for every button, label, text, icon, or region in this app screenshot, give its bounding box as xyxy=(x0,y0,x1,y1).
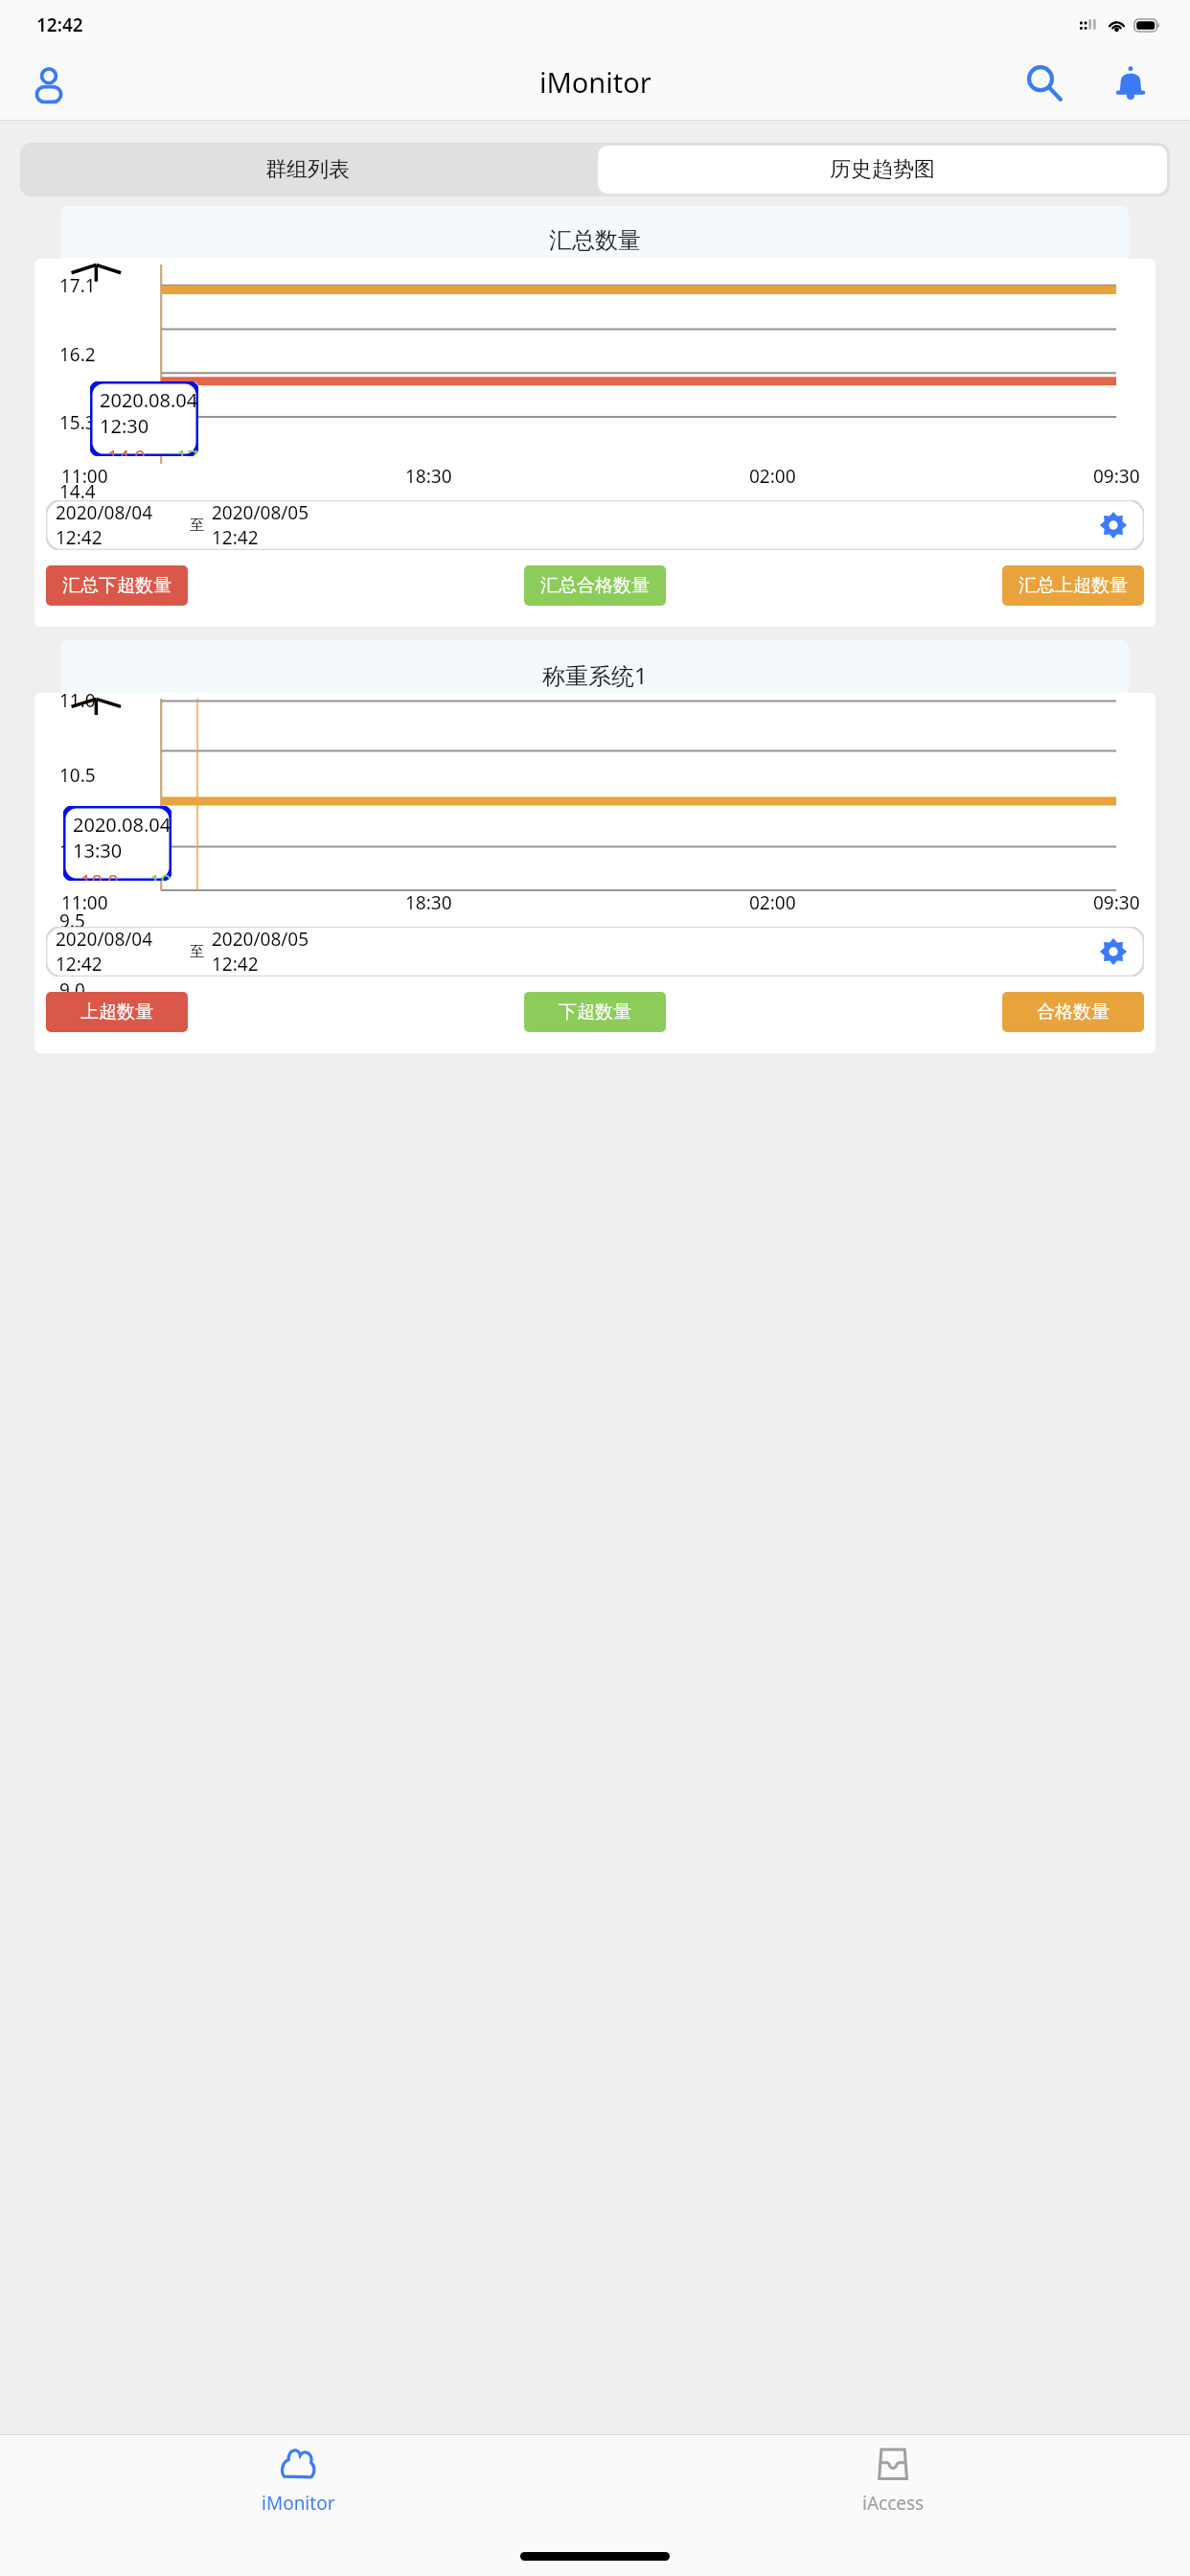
button[interactable]: 2020/08/05 12:42 xyxy=(212,500,346,550)
staticText: iMonitor xyxy=(539,63,652,101)
staticText: 14.0 xyxy=(107,444,146,456)
staticText: 9.5 xyxy=(59,908,85,933)
button[interactable]: Settings xyxy=(1094,932,1133,971)
staticText: 17.0 xyxy=(176,444,198,456)
staticText: 02:00 xyxy=(749,464,796,489)
staticText: 历史趋势图 xyxy=(830,156,935,183)
button[interactable]: iAccess xyxy=(797,2447,989,2516)
staticText: 至 xyxy=(190,943,204,961)
staticText: 09:30 xyxy=(1093,464,1140,489)
staticText: 称重系统1 xyxy=(542,659,648,691)
staticText: 群组列表 xyxy=(265,156,350,183)
staticText: 汇总数量 xyxy=(549,226,641,255)
button[interactable]: 2020/08/05 12:42 xyxy=(212,927,346,977)
button[interactable]: 汇总下超数量 xyxy=(46,565,188,606)
staticText: 合格数量 xyxy=(1037,1000,1110,1023)
staticText: 至 xyxy=(190,517,204,535)
staticText: 17.1 xyxy=(59,273,96,298)
staticText: 18:30 xyxy=(405,464,452,489)
staticText: iMonitor xyxy=(262,2491,335,2516)
staticText: 2020/08/04 12:42 xyxy=(56,500,182,550)
staticText: 2020.08.04 13:30 xyxy=(73,812,172,863)
button[interactable]: Search xyxy=(1010,49,1079,118)
staticText: 16.2 xyxy=(59,342,96,367)
button[interactable]: 历史趋势图 xyxy=(598,146,1167,194)
button[interactable]: 2020/08/04 12:42 xyxy=(56,927,182,977)
staticText: 汇总下超数量 xyxy=(62,574,172,597)
staticText: 9.0 xyxy=(59,977,85,1002)
staticText: 15.3 xyxy=(59,410,96,435)
staticText: 11:00 xyxy=(61,464,108,489)
staticText: 09:30 xyxy=(1093,890,1140,915)
button[interactable]: Notifications xyxy=(1096,49,1165,118)
staticText: 02:00 xyxy=(749,890,796,915)
staticText: 10.0 xyxy=(149,868,172,881)
staticText: 下超数量 xyxy=(559,1000,631,1023)
staticText: 12:42 xyxy=(36,12,83,37)
button[interactable]: Profile xyxy=(19,54,79,113)
staticText: 汇总合格数量 xyxy=(540,574,650,597)
button[interactable]: 下超数量 xyxy=(524,992,666,1032)
staticText: 2020/08/05 12:42 xyxy=(212,927,346,977)
staticText: 2020.08.04 12:30 xyxy=(100,387,198,439)
staticText: 10.0 xyxy=(80,868,119,881)
staticText: 11.0 xyxy=(59,693,96,713)
button[interactable]: 汇总上超数量 xyxy=(1002,565,1144,606)
staticText: 10.0 xyxy=(59,839,96,863)
staticText: iAccess xyxy=(862,2491,925,2516)
button[interactable]: 合格数量 xyxy=(1002,992,1144,1032)
staticText: 11:00 xyxy=(61,890,108,915)
button[interactable]: 群组列表 xyxy=(20,143,595,196)
staticText: 汇总上超数量 xyxy=(1018,574,1128,597)
staticText: 10.5 xyxy=(59,763,96,788)
button[interactable]: 2020/08/04 12:42 xyxy=(56,500,182,550)
staticText: 14.4 xyxy=(59,479,96,504)
button[interactable]: Settings xyxy=(1094,506,1133,544)
button[interactable]: iMonitor xyxy=(202,2447,394,2516)
staticText: 2020/08/04 12:42 xyxy=(56,927,182,977)
button[interactable]: 上超数量 xyxy=(46,992,188,1032)
staticText: 上超数量 xyxy=(80,1000,153,1023)
button[interactable]: 汇总合格数量 xyxy=(524,565,666,606)
staticText: 2020/08/05 12:42 xyxy=(212,500,346,550)
staticText: 18:30 xyxy=(405,890,452,915)
